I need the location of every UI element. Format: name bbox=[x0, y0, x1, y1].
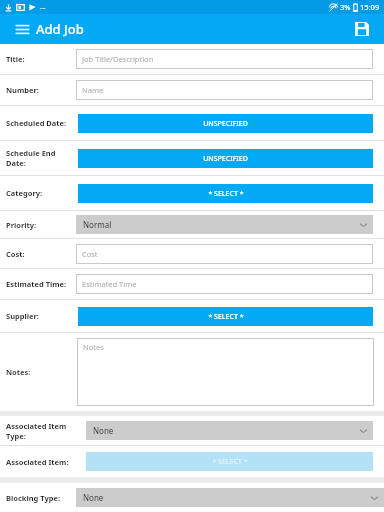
staticText: * SELECT * bbox=[208, 312, 244, 322]
button[interactable]: Job Title/Description bbox=[76, 49, 373, 69]
staticText: Schedule End Date: bbox=[6, 148, 76, 168]
button[interactable]: Cost bbox=[76, 244, 373, 264]
staticText: Cost bbox=[82, 249, 98, 259]
button[interactable]: * SELECT * bbox=[78, 307, 373, 326]
staticText: Category: bbox=[6, 188, 43, 198]
staticText: None bbox=[93, 425, 114, 436]
staticText: Normal bbox=[83, 219, 112, 230]
staticText: None bbox=[83, 492, 104, 503]
button[interactable]: Scheduled Date: bbox=[0, 106, 384, 140]
staticText: Supplier: bbox=[6, 311, 39, 321]
button[interactable]: Estimated Time: bbox=[0, 269, 384, 299]
button[interactable]: Title: bbox=[0, 44, 384, 74]
button[interactable]: None bbox=[86, 421, 373, 440]
staticText: Estimated Time bbox=[82, 279, 137, 289]
button[interactable]: Schedule End Date: bbox=[0, 141, 384, 175]
button[interactable]: Number: bbox=[0, 75, 384, 105]
button[interactable]: UNSPECIFIED bbox=[78, 114, 373, 133]
button[interactable]: Name bbox=[76, 80, 373, 100]
button[interactable]: Supplier: bbox=[0, 300, 384, 332]
button[interactable]: Blocking Type: bbox=[0, 483, 384, 512]
staticText: Associated Item Type: bbox=[6, 421, 76, 441]
button[interactable]: Cost: bbox=[0, 239, 384, 268]
staticText: Blocking Type: bbox=[6, 493, 61, 503]
staticText: Associated Item: bbox=[6, 457, 69, 467]
button[interactable]: * SELECT * bbox=[86, 452, 373, 471]
staticText: * SELECT * bbox=[208, 189, 244, 199]
button[interactable]: None bbox=[76, 488, 384, 507]
staticText: UNSPECIFIED bbox=[203, 154, 248, 164]
button[interactable]: Save bbox=[348, 15, 376, 43]
staticText: UNSPECIFIED bbox=[203, 119, 248, 129]
staticText: Cost: bbox=[6, 249, 25, 259]
button[interactable]: Associated Item Type: bbox=[0, 416, 384, 445]
staticText: Estimated Time: bbox=[6, 279, 67, 289]
staticText: Add Job bbox=[36, 20, 84, 38]
staticText: Job Title/Description bbox=[82, 54, 154, 64]
button[interactable]: UNSPECIFIED bbox=[78, 149, 373, 168]
staticText: 3% bbox=[340, 2, 351, 12]
button[interactable]: Notes bbox=[77, 338, 374, 406]
staticText: ... bbox=[40, 2, 46, 12]
button[interactable]: Category: bbox=[0, 176, 384, 210]
button[interactable]: * SELECT * bbox=[78, 184, 373, 203]
staticText: Number: bbox=[6, 85, 39, 95]
button[interactable]: Estimated Time bbox=[76, 274, 373, 294]
staticText: 15:09 bbox=[360, 2, 380, 12]
button[interactable]: Associated Item: bbox=[0, 446, 384, 477]
staticText: Notes: bbox=[6, 367, 31, 377]
staticText: * SELECT * bbox=[212, 457, 248, 467]
staticText: Scheduled Date: bbox=[6, 118, 67, 128]
button[interactable]: Normal bbox=[76, 215, 373, 234]
staticText: Notes bbox=[83, 342, 104, 352]
button[interactable]: Open navigation menu bbox=[8, 15, 36, 43]
staticText: Priority: bbox=[6, 220, 37, 230]
staticText: Title: bbox=[6, 54, 25, 64]
button[interactable]: Notes: bbox=[0, 333, 384, 411]
staticText: Name bbox=[82, 85, 104, 95]
button[interactable]: Priority: bbox=[0, 211, 384, 238]
